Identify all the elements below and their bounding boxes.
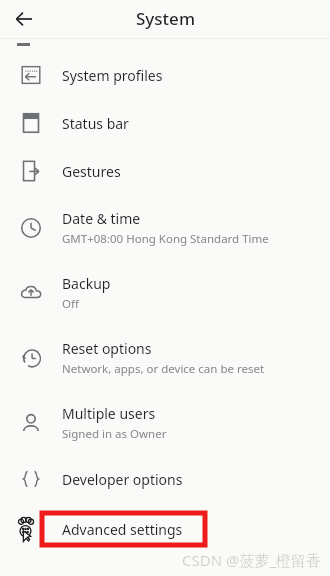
button[interactable]: Developer options bbox=[0, 455, 330, 503]
staticText: Status bar bbox=[62, 114, 129, 133]
staticText: System profiles bbox=[62, 66, 163, 85]
staticText: CSDN @菠萝_橙留香 bbox=[182, 550, 322, 570]
staticText: Signed in as Owner bbox=[62, 426, 167, 442]
button[interactable]: Advanced settings bbox=[0, 503, 330, 555]
staticText: Off bbox=[62, 296, 79, 312]
staticText: Reset options bbox=[62, 339, 152, 358]
staticText: Multiple users bbox=[62, 404, 156, 423]
staticText: Gestures bbox=[62, 162, 121, 181]
button[interactable]: Status bar bbox=[0, 99, 330, 147]
staticText: GMT+08:00 Hong Kong Standard Time bbox=[62, 231, 269, 247]
button[interactable]: Back bbox=[8, 3, 40, 35]
button[interactable]: Gestures bbox=[0, 147, 330, 195]
staticText: Advanced settings bbox=[62, 520, 183, 539]
button[interactable]: Backup bbox=[0, 260, 330, 325]
button[interactable]: System profiles bbox=[0, 51, 330, 99]
button[interactable]: Multiple users bbox=[0, 390, 330, 455]
staticText: Backup bbox=[62, 274, 111, 293]
staticText: Date & time bbox=[62, 209, 141, 228]
button[interactable]: Reset options bbox=[0, 325, 330, 390]
staticText: System bbox=[136, 7, 195, 30]
staticText: Developer options bbox=[62, 470, 183, 489]
staticText: Network, apps, or device can be reset bbox=[62, 361, 265, 377]
button[interactable]: Date & time bbox=[0, 195, 330, 260]
